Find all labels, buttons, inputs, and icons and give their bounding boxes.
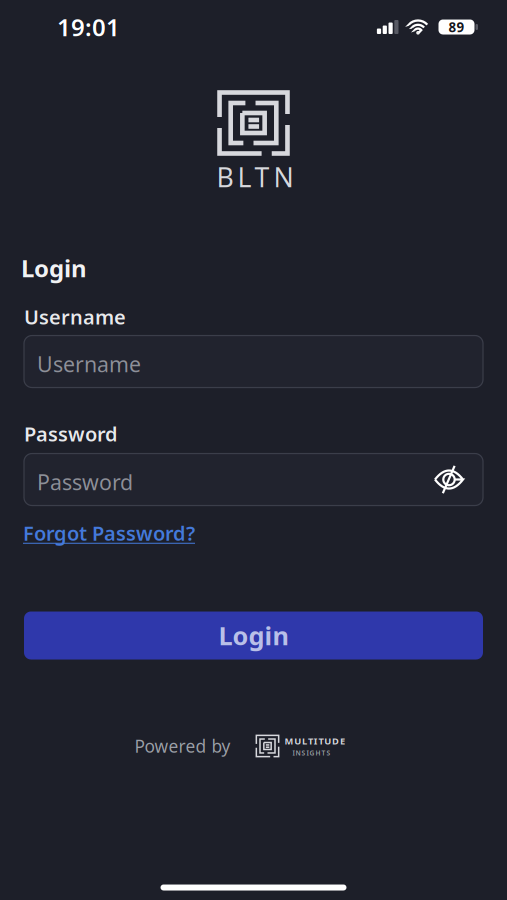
staticText: Password bbox=[24, 420, 118, 447]
staticText: 19:01 bbox=[57, 11, 120, 43]
staticText: Forgot Password? bbox=[23, 520, 195, 546]
button[interactable]: Login bbox=[24, 611, 483, 659]
button[interactable]: Show password bbox=[435, 470, 483, 489]
staticText: INSIGHTS bbox=[292, 748, 330, 757]
staticText: 89 bbox=[448, 18, 464, 36]
staticText: Login bbox=[21, 252, 87, 284]
staticText: Username bbox=[37, 350, 141, 378]
staticText: Powered by bbox=[134, 734, 230, 757]
staticText: Login bbox=[218, 619, 288, 652]
staticText: Username bbox=[24, 303, 126, 330]
staticText: BLTN bbox=[216, 159, 293, 195]
staticText: Password bbox=[37, 468, 133, 496]
staticText: MULTITUDE bbox=[284, 735, 345, 747]
button[interactable]: Forgot Password? bbox=[23, 520, 195, 546]
